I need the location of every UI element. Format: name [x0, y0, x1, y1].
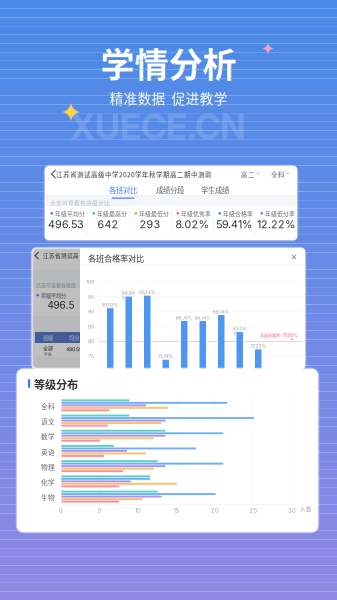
staticText: XUECE.CN — [70, 106, 246, 148]
staticText: 75 — [88, 353, 94, 359]
staticText: 86.74% — [194, 315, 210, 321]
staticText: 数学 — [41, 432, 55, 441]
staticText: 均分 — [69, 334, 79, 341]
button[interactable]: 成绩分段 — [156, 184, 184, 195]
staticText: 高二 — [241, 170, 255, 179]
staticText: 95 — [88, 294, 94, 300]
staticText: 年级合格率 — [223, 209, 253, 218]
staticText: 293 — [139, 218, 160, 231]
staticText: 90 — [88, 308, 94, 315]
staticText: 94.94% — [122, 291, 135, 301]
button[interactable]: 各班对比 — [109, 184, 137, 199]
button[interactable]: Back — [48, 169, 60, 180]
staticText: 语文 — [41, 416, 55, 426]
staticText: 各班合格率对比 — [88, 252, 144, 264]
staticText: 20 — [211, 507, 219, 514]
staticText: 年级 — [44, 351, 52, 357]
staticText: 80 — [88, 338, 94, 345]
staticText: 73.74% — [158, 354, 173, 359]
staticText: 全科 — [41, 401, 55, 411]
staticText: 年级低分率 — [265, 209, 295, 218]
staticText: 490.55 — [66, 346, 82, 352]
staticText: 496.5 — [47, 299, 74, 311]
button[interactable]: Close — [289, 252, 299, 262]
staticText: 642 — [97, 218, 118, 231]
staticText: 江苏省测试高 — [43, 251, 79, 259]
staticText: 年级平均分 — [41, 292, 66, 299]
staticText: 班级 — [43, 334, 53, 341]
staticText: 年级最低分 — [139, 209, 169, 218]
staticText: 86.74% — [176, 315, 192, 321]
staticText: 人数 — [300, 505, 312, 513]
staticText: 59.41% — [216, 218, 252, 231]
staticText: 年级平均分 — [55, 209, 85, 218]
staticText: 91.03% — [102, 303, 118, 308]
staticText: 各班对比 — [109, 184, 137, 195]
staticText: 年级合格率 — [260, 333, 280, 339]
staticText: 100 — [86, 279, 94, 285]
staticText: 10 — [135, 507, 141, 514]
staticText: 12.22% — [257, 218, 295, 231]
staticText: 化学 — [41, 477, 55, 487]
staticText: 95.24% — [139, 290, 155, 295]
staticText: 30 — [288, 507, 296, 514]
staticText: 物理 — [41, 462, 55, 472]
staticText: 77.23% — [250, 344, 265, 349]
button[interactable]: 全科 — [271, 170, 289, 179]
staticText: 精准数据 促进教学 — [109, 88, 227, 108]
staticText: 年级最高分 — [97, 209, 127, 218]
staticText: 8.02% — [175, 218, 208, 231]
staticText: 全科 — [271, 170, 285, 179]
staticText: 0 — [59, 507, 63, 514]
staticText: 年级优秀率 — [181, 209, 211, 218]
staticText: 15 — [173, 507, 179, 514]
staticText: 83.04% — [233, 326, 246, 337]
staticText: 英语 — [41, 447, 55, 456]
staticText: 生物 — [41, 492, 55, 502]
staticText: 学情分析 — [100, 38, 236, 87]
staticText: 5 — [97, 507, 101, 514]
staticText: 496.53 — [48, 218, 84, 231]
staticText: 25 — [249, 507, 257, 514]
staticText: 学生成绩 — [201, 184, 229, 195]
button[interactable]: 学生成绩 — [201, 184, 229, 195]
staticText: 点击可查看各班级对比 — [50, 198, 110, 207]
staticText: 江苏省测试高级中学2020学年秋学期高二期中测验 — [56, 170, 212, 179]
staticText: 点击可查看各班级 — [36, 281, 76, 288]
button[interactable]: 高二 — [241, 170, 259, 179]
staticText: 全部 — [43, 344, 53, 351]
staticText: 等级分布 — [34, 376, 78, 392]
staticText: 85 — [88, 323, 94, 330]
staticText: 成绩分段 — [156, 184, 184, 195]
staticText: 88.74% — [213, 309, 229, 315]
staticText: 79.98% — [282, 333, 297, 338]
